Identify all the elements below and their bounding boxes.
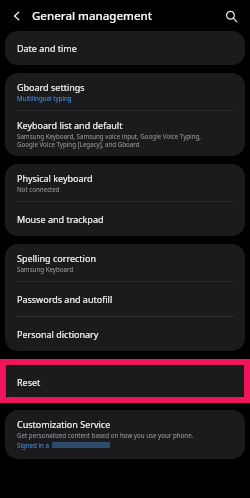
button[interactable]: Spelling correction <box>5 244 245 281</box>
staticText: Date and time <box>17 42 77 54</box>
button[interactable]: Reset <box>6 366 244 397</box>
staticText: Physical keyboard <box>17 172 93 184</box>
staticText: Passwords and autofill <box>17 293 113 305</box>
staticText: General management <box>32 8 153 24</box>
button[interactable]: Physical keyboard <box>5 164 245 201</box>
button[interactable]: Keyboard list and default <box>5 111 245 156</box>
button[interactable]: Personal dictionary <box>5 317 245 351</box>
button[interactable]: Customization Service <box>5 410 245 459</box>
staticText: Google Voice Typing [Legacy], and Gboard <box>17 140 140 148</box>
staticText: Gboard settings <box>17 81 85 93</box>
staticText: Reset <box>17 376 41 388</box>
button[interactable]: Gboard settings <box>5 73 245 110</box>
staticText: Multilingual typing <box>17 94 72 102</box>
staticText: Personal dictionary <box>17 328 99 340</box>
staticText: Signed in a <box>17 441 50 449</box>
staticText: Not connected <box>17 185 60 193</box>
button[interactable]: Date and time <box>5 31 245 65</box>
staticText: Samsung Keyboard <box>17 265 74 273</box>
staticText: Samsung Keyboard, Samsung voice input, G… <box>17 132 201 140</box>
staticText: Keyboard list and default <box>17 119 123 131</box>
button[interactable]: Back <box>6 5 27 26</box>
button[interactable]: Mouse and trackpad <box>5 202 245 236</box>
staticText: Mouse and trackpad <box>17 213 104 225</box>
button[interactable]: Passwords and autofill <box>5 282 245 316</box>
button[interactable]: Search <box>220 5 242 27</box>
staticText: Get personalized content based on how yo… <box>17 431 194 439</box>
staticText: Customization Service <box>17 418 111 430</box>
staticText: Spelling correction <box>17 252 96 264</box>
